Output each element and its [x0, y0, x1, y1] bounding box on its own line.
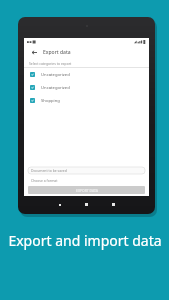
staticText: Uncategorized [41, 85, 70, 91]
staticText: Select categories to export [29, 61, 72, 66]
button[interactable]: Uncategorized [24, 81, 149, 94]
staticText: Choose a format [31, 178, 58, 183]
staticText: Export data [43, 49, 71, 56]
button[interactable]: Back [56, 201, 63, 208]
button[interactable]: Document to be saved [28, 167, 145, 174]
staticText: Document to be saved [31, 168, 67, 173]
button[interactable]: Home [83, 201, 90, 208]
button[interactable]: Shopping [24, 94, 149, 107]
button[interactable]: Choose a format [28, 177, 145, 184]
staticText: Shopping [41, 98, 60, 104]
staticText: EXPORT DATA [76, 188, 98, 193]
button[interactable]: Recents [110, 201, 117, 208]
button[interactable]: Back [29, 47, 39, 57]
button[interactable]: EXPORT DATA [28, 186, 145, 194]
staticText: Export and import data [8, 231, 162, 250]
staticText: Uncategorized [41, 72, 70, 78]
button[interactable]: Uncategorized [24, 68, 149, 81]
